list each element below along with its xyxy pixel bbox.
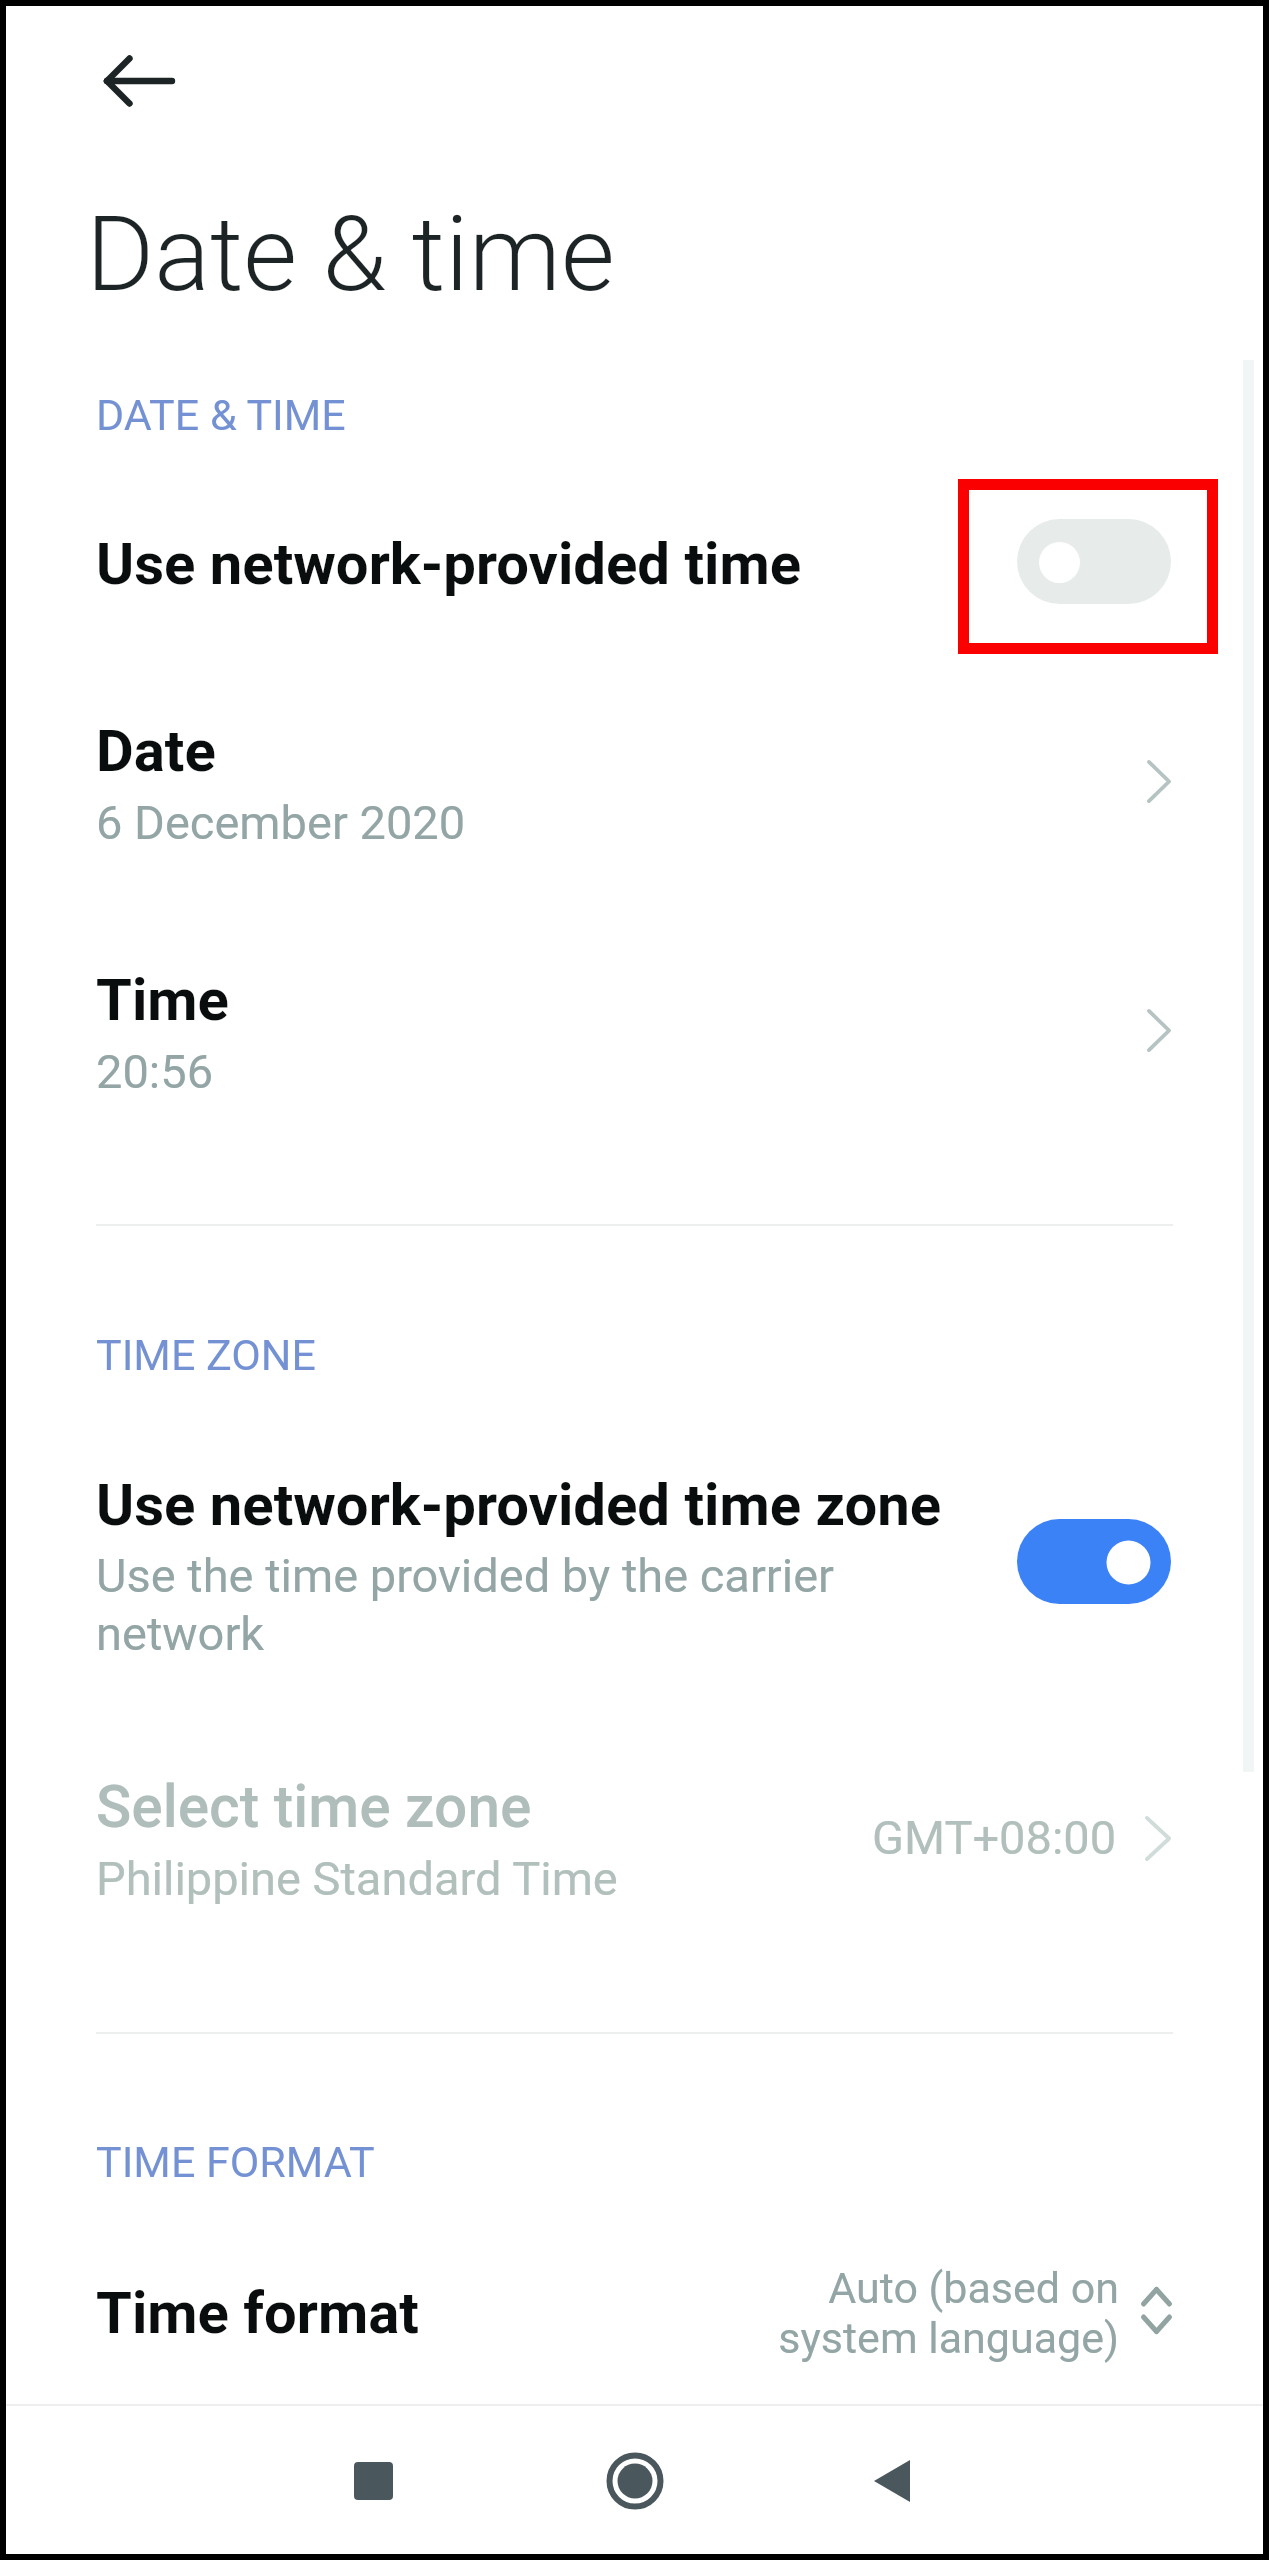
staticText: Time format <box>96 2279 419 2347</box>
button[interactable]: Home <box>545 2403 725 2559</box>
staticText: Time <box>96 966 229 1034</box>
button[interactable]: Recent apps <box>283 2403 463 2559</box>
staticText: TIME FORMAT <box>96 2137 375 2187</box>
button[interactable]: Use network-provided time <box>6 473 1263 628</box>
staticText: Select time zone <box>96 1773 532 1842</box>
staticText: Philippine Standard Time <box>96 1851 618 1906</box>
staticText: DATE & TIME <box>96 390 346 440</box>
staticText: 6 December 2020 <box>96 795 466 850</box>
staticText: Date & time <box>86 194 615 316</box>
button[interactable]: Back <box>81 27 189 135</box>
staticText: Use the time provided by the carrier net… <box>96 1548 856 1661</box>
staticText: Auto (based on system language) <box>774 2263 1119 2363</box>
staticText: TIME ZONE <box>96 1330 316 1380</box>
button[interactable]: Back <box>802 2403 982 2559</box>
button[interactable]: Select time zone <box>6 1727 1263 1917</box>
staticText: 20:56 <box>96 1044 214 1099</box>
button[interactable]: Use network-provided time zone <box>6 1422 1263 1672</box>
staticText: GMT+08:00 <box>872 1810 1117 1865</box>
staticText: Use network-provided time <box>96 530 802 598</box>
staticText: Date <box>96 717 216 785</box>
button[interactable]: Time format <box>6 2229 1263 2389</box>
button[interactable]: Time <box>6 922 1263 1112</box>
staticText: Use network-provided time zone <box>96 1471 942 1539</box>
button[interactable]: Date <box>6 672 1263 862</box>
